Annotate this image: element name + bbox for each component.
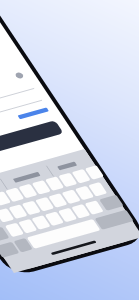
button[interactable]: Login screen preview: [0, 0, 139, 300]
